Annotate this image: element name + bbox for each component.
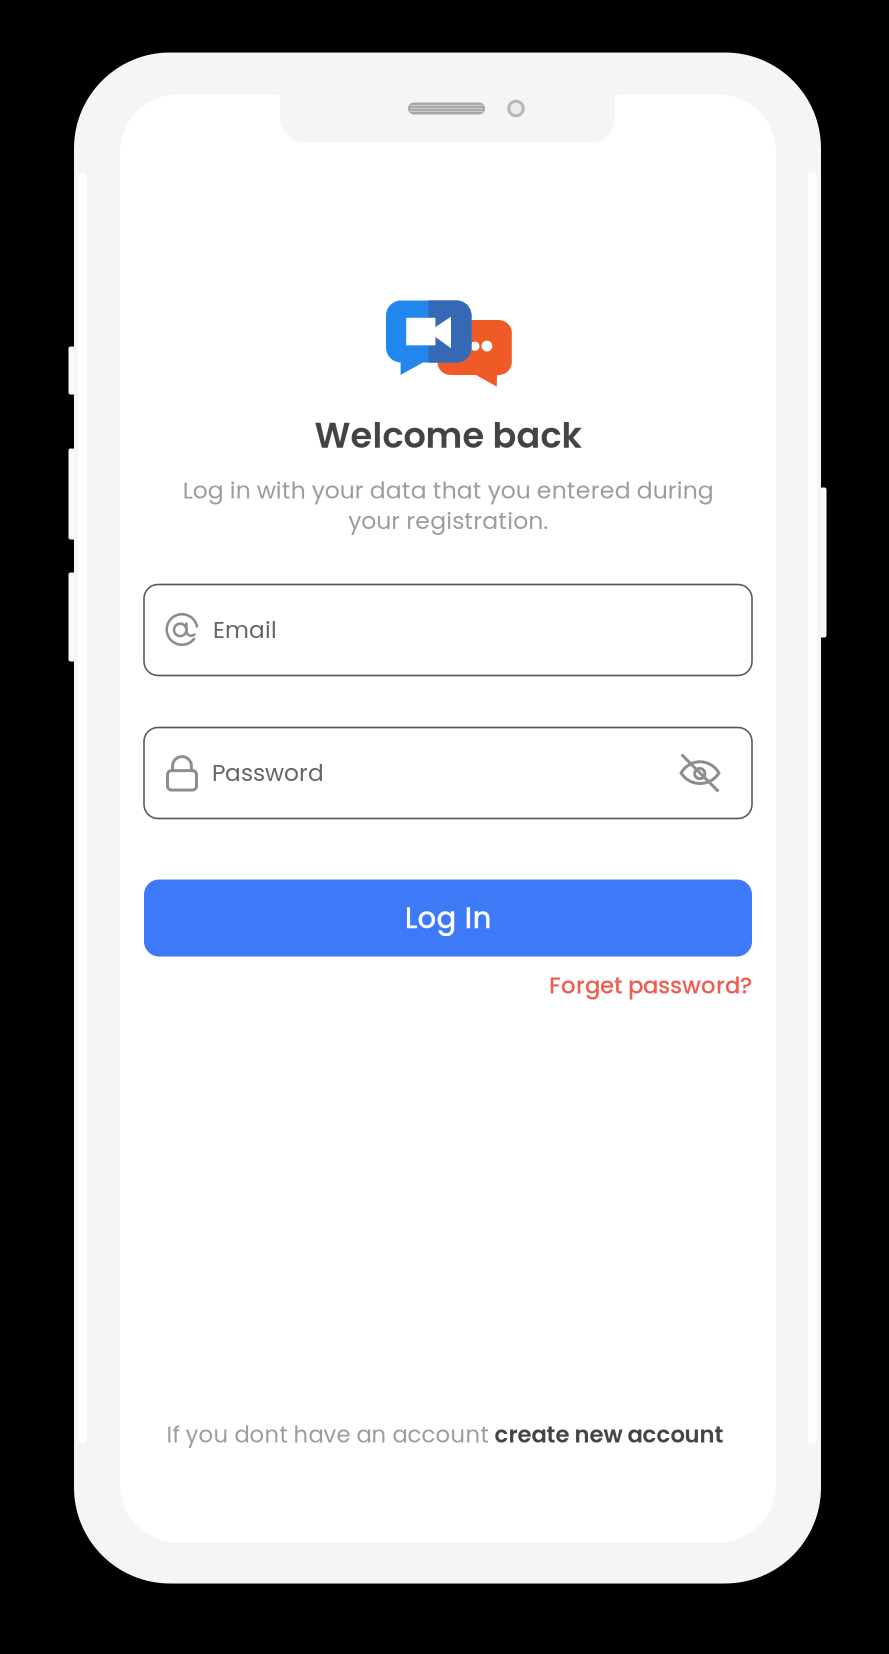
staticText: Email [213, 614, 277, 646]
staticText: If you dont have an account [166, 1419, 494, 1450]
staticText: Welcome back [314, 411, 581, 460]
button[interactable]: create new account [494, 1419, 723, 1450]
staticText: Log in with your data that you entered d… [182, 474, 713, 537]
button[interactable]: Password [144, 727, 752, 818]
button[interactable]: Log In [144, 879, 752, 956]
button[interactable]: Email [144, 584, 752, 675]
staticText: Forget password? [549, 969, 752, 1001]
staticText: Password [212, 757, 324, 789]
button[interactable]: Show password [674, 747, 726, 799]
staticText: Log In [404, 897, 491, 939]
button[interactable]: Forget password? [549, 969, 752, 1001]
staticText: create new account [494, 1419, 723, 1450]
